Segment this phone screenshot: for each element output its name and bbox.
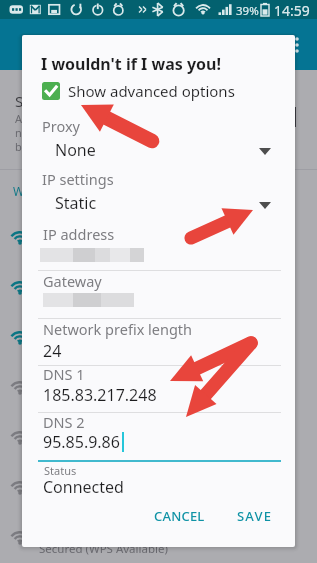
staticText: IP address xyxy=(43,224,115,244)
staticText: Network prefix length xyxy=(43,319,193,339)
button[interactable]: Open dropdown xyxy=(251,191,279,219)
staticText: Home-WiFi xyxy=(39,272,111,291)
staticText: Static xyxy=(55,192,97,214)
button[interactable]: Home-WiFi xyxy=(0,264,317,314)
staticText: None xyxy=(55,139,96,161)
staticText: Secured (WPS Available) xyxy=(39,541,168,557)
button[interactable]: More options xyxy=(290,33,304,55)
staticText: Secured (WPS Available) xyxy=(39,491,168,507)
staticText: 14:59 xyxy=(274,1,310,20)
button[interactable]: Guest-Net xyxy=(0,314,317,364)
staticText: 24 xyxy=(43,340,62,362)
staticText: NETGEAR42 xyxy=(39,372,117,391)
button[interactable]: AndroidAP xyxy=(0,214,317,264)
staticText: Guest-Net xyxy=(39,322,106,341)
button[interactable]: HUAWEI-2G xyxy=(0,514,317,563)
staticText: IP settings xyxy=(42,169,114,189)
staticText: Status xyxy=(44,463,77,478)
staticText: 95.85.9.86 xyxy=(43,431,120,453)
staticText: Gateway xyxy=(43,271,102,291)
staticText: Automatically switch between Wi-Fi netwo… xyxy=(15,111,206,154)
staticText: AndroidAP xyxy=(39,222,109,241)
button[interactable]: Open dropdown xyxy=(251,137,279,165)
button[interactable]: SAVE xyxy=(230,500,279,532)
staticText: I wouldn't if I was you! xyxy=(41,53,222,75)
button[interactable]: TP-Link_88 xyxy=(0,414,317,464)
staticText: Secured (WPS Available) xyxy=(39,441,168,457)
staticText: CANCEL xyxy=(154,507,205,525)
staticText: Secured (WPS Available) xyxy=(39,341,168,357)
staticText: Linksys xyxy=(39,472,87,491)
staticText: Smart network switch xyxy=(15,91,169,111)
button[interactable]: Show advanced options xyxy=(35,77,260,105)
staticText: Proxy xyxy=(42,116,81,136)
button[interactable]: NETGEAR42 xyxy=(0,364,317,414)
staticText: TP-Link_88 xyxy=(39,422,110,441)
staticText: DNS 1 xyxy=(43,364,85,384)
staticText: 39% xyxy=(236,3,259,19)
staticText: Connected xyxy=(43,476,124,498)
button[interactable]: Linksys xyxy=(0,464,317,514)
staticText: Secured (WPS Available) xyxy=(39,291,168,307)
staticText: Secured (WPS Available) xyxy=(39,391,168,407)
staticText: Wi-Fi networks xyxy=(13,183,96,199)
button[interactable]: CANCEL xyxy=(148,500,211,532)
staticText: DNS 2 xyxy=(43,412,85,432)
staticText: Secured (WPS Available) xyxy=(39,241,168,257)
staticText: 185.83.217.248 xyxy=(43,384,157,406)
staticText: Show advanced options xyxy=(68,81,235,101)
staticText: SAVE xyxy=(237,507,273,525)
